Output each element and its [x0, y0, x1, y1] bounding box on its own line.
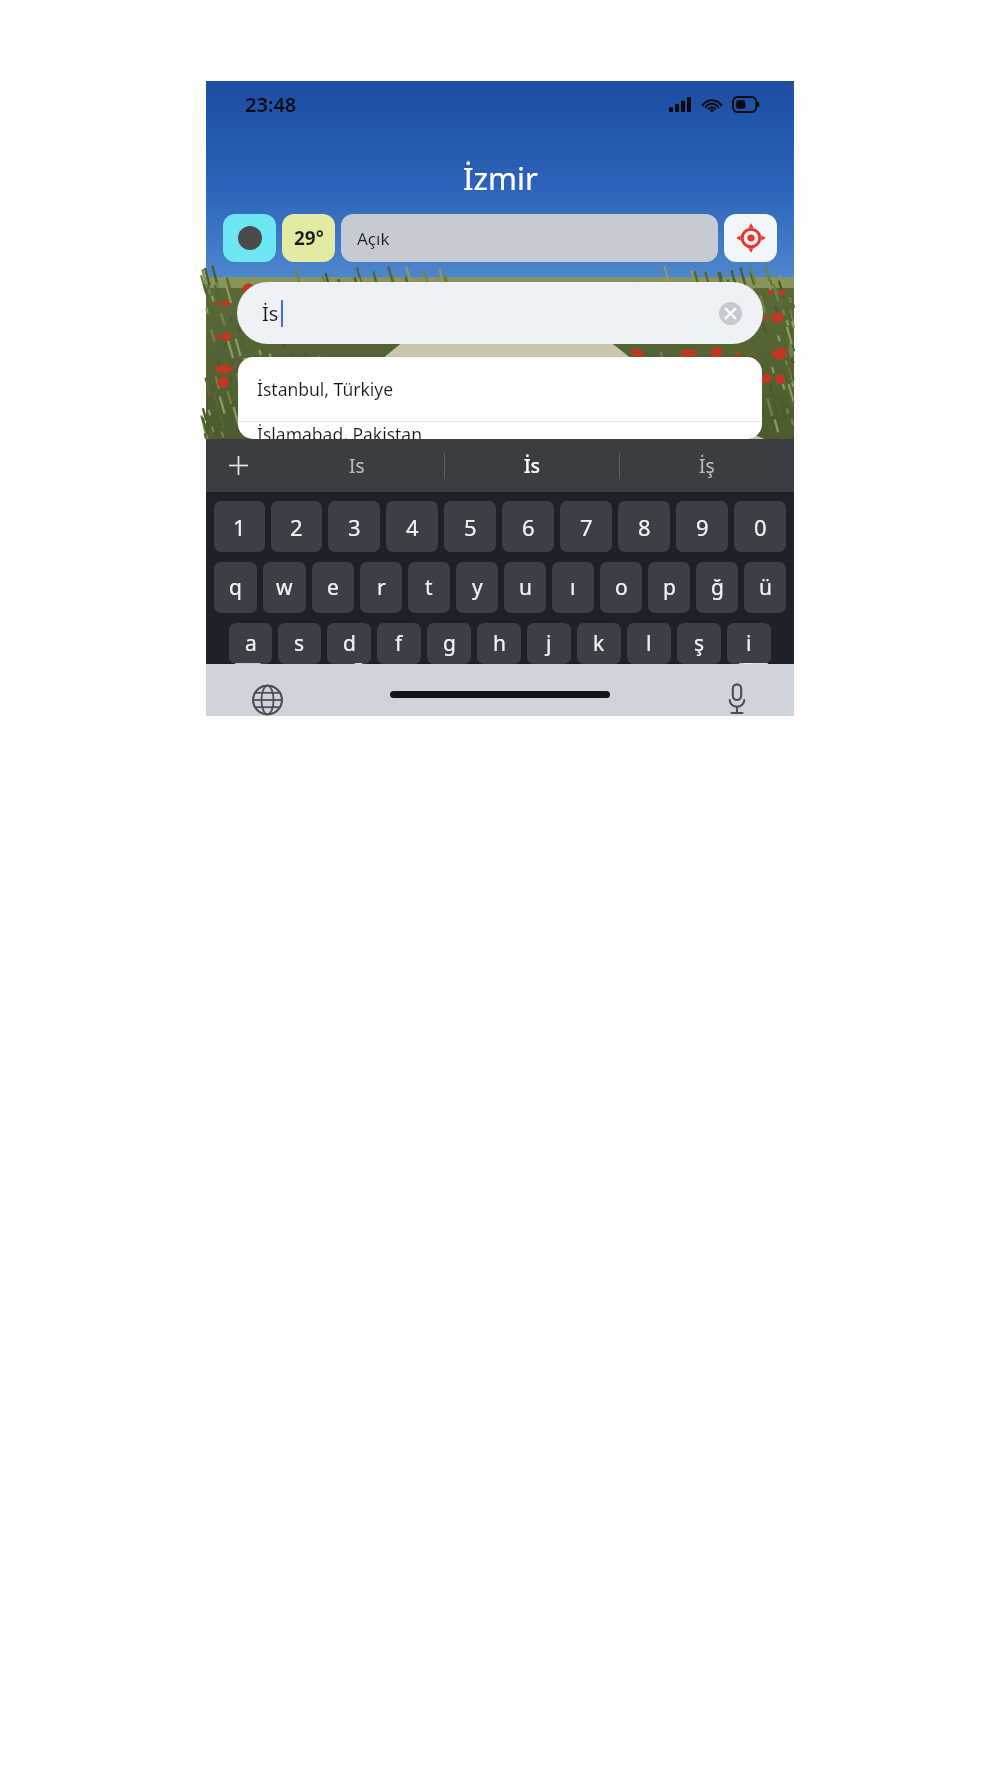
button[interactable]: Sözlüğe ekle [206, 439, 270, 492]
button[interactable]: Dil değiştir [250, 684, 285, 716]
staticText: j [546, 629, 552, 658]
button[interactable]: s [278, 623, 321, 664]
button[interactable]: 7 [560, 501, 612, 552]
staticText: s [294, 629, 305, 658]
staticText: 4 [406, 512, 419, 542]
staticText: 0 [754, 512, 767, 542]
button[interactable]: 6 [502, 501, 554, 552]
button[interactable]: Konumumu bul [724, 214, 777, 262]
staticText: İs [524, 453, 540, 479]
button[interactable]: r [360, 562, 402, 613]
staticText: o [615, 573, 628, 602]
button[interactable]: u [504, 562, 546, 613]
staticText: q [229, 573, 242, 602]
button[interactable]: y [456, 562, 498, 613]
staticText: p [663, 573, 676, 602]
staticText: d [343, 629, 356, 658]
staticText: w [276, 573, 293, 602]
button[interactable]: g [427, 623, 471, 664]
staticText: 2 [290, 512, 303, 542]
staticText: f [395, 629, 403, 658]
staticText: Is [349, 453, 365, 479]
button[interactable]: ü [744, 562, 786, 613]
button[interactable]: ş [677, 623, 721, 664]
button[interactable]: 0 [734, 501, 786, 552]
staticText: r [377, 573, 386, 602]
button[interactable]: a [229, 623, 272, 664]
staticText: t [425, 573, 433, 602]
staticText: İstanbul, Türkiye [257, 377, 394, 401]
staticText: Açık [357, 227, 390, 250]
button[interactable]: ı [552, 562, 594, 613]
staticText: 8 [638, 512, 651, 542]
button[interactable]: 8 [618, 501, 670, 552]
staticText: l [646, 629, 652, 658]
button[interactable]: İslamabad, Pakistan [238, 422, 762, 439]
button[interactable]: ğ [696, 562, 738, 613]
button[interactable]: 5 [444, 501, 496, 552]
button[interactable]: i [727, 623, 771, 664]
staticText: İzmir [463, 157, 538, 199]
button[interactable]: k [577, 623, 621, 664]
staticText: a [245, 629, 257, 658]
button[interactable]: 3 [328, 501, 380, 552]
staticText: k [593, 629, 605, 658]
staticText: 5 [464, 512, 477, 542]
button[interactable]: 4 [386, 501, 438, 552]
staticText: 23:48 [245, 91, 297, 118]
staticText: İş [699, 453, 715, 479]
button[interactable]: p [648, 562, 690, 613]
button[interactable]: Hava durumu simgesi [223, 214, 276, 262]
staticText: y [472, 573, 483, 602]
button[interactable]: İs [237, 282, 763, 344]
button[interactable]: 1 [214, 501, 265, 552]
staticText: ü [759, 573, 772, 602]
staticText: 1 [233, 512, 246, 542]
staticText: g [443, 629, 456, 658]
button[interactable]: 2 [271, 501, 322, 552]
staticText: 6 [522, 512, 535, 542]
button[interactable]: d [327, 623, 371, 664]
button[interactable]: w [263, 562, 306, 613]
button[interactable]: q [214, 562, 257, 613]
button[interactable]: Temizle [719, 302, 742, 325]
staticText: u [519, 573, 532, 602]
button[interactable]: Mikrofon [724, 682, 750, 716]
staticText: ş [694, 629, 705, 658]
button[interactable]: f [377, 623, 421, 664]
staticText: İs [262, 300, 279, 327]
button[interactable]: j [527, 623, 571, 664]
staticText: i [746, 629, 752, 658]
button[interactable]: l [627, 623, 671, 664]
button[interactable]: e [312, 562, 354, 613]
staticText: h [493, 629, 506, 658]
staticText: 29° [294, 225, 324, 251]
button[interactable]: Is [270, 439, 444, 492]
staticText: İslamabad, Pakistan [257, 422, 423, 439]
staticText: 7 [580, 512, 593, 542]
staticText: ğ [711, 573, 724, 602]
button[interactable]: İstanbul, Türkiye [238, 357, 762, 421]
button[interactable]: İs [445, 439, 619, 492]
button[interactable]: 9 [676, 501, 728, 552]
button[interactable]: İş [620, 439, 794, 492]
button[interactable]: t [408, 562, 450, 613]
button[interactable]: 29° [282, 214, 335, 262]
button[interactable]: o [600, 562, 642, 613]
staticText: 9 [696, 512, 709, 542]
staticText: e [327, 573, 339, 602]
staticText: ı [570, 573, 576, 602]
staticText: 3 [348, 512, 361, 542]
button[interactable]: Açık [341, 214, 718, 262]
button[interactable]: h [477, 623, 521, 664]
